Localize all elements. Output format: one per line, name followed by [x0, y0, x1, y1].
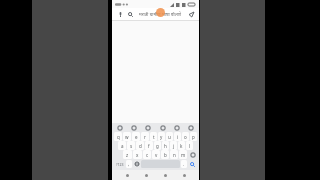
staticText: r	[144, 134, 146, 140]
staticText: s	[130, 143, 133, 149]
button[interactable]: u	[166, 132, 173, 141]
button[interactable]: x	[133, 150, 142, 159]
staticText: f	[148, 143, 150, 149]
button[interactable]: Search	[126, 10, 134, 18]
button[interactable]: Keyboard tool 1	[117, 125, 123, 131]
staticText: ,	[128, 161, 130, 167]
button[interactable]: Change language	[133, 160, 140, 168]
button[interactable]: i	[174, 132, 181, 141]
staticText: e	[135, 134, 138, 140]
staticText: b	[164, 152, 167, 158]
button[interactable]: Voice search	[116, 10, 124, 18]
button[interactable]: Back	[123, 171, 131, 179]
button[interactable]: r	[141, 132, 149, 141]
button[interactable]: z	[123, 150, 132, 159]
button[interactable]: Voice search	[112, 8, 199, 20]
button[interactable]: f	[145, 141, 153, 150]
button[interactable]: k	[178, 141, 185, 150]
button[interactable]: v	[152, 150, 160, 159]
button[interactable]: Keyboard tool 6	[188, 125, 194, 131]
button[interactable]: g	[154, 141, 161, 150]
staticText: t	[153, 134, 155, 140]
button[interactable]: ,	[126, 160, 132, 168]
button[interactable]: p	[190, 132, 197, 141]
staticText: v	[155, 152, 158, 158]
button[interactable]: Home	[142, 171, 150, 179]
button[interactable]: y	[158, 132, 165, 141]
button[interactable]: Menu	[180, 171, 188, 179]
staticText: x	[136, 152, 139, 158]
staticText: मराठी ग्रामीण भाषा बोलणे	[139, 11, 181, 17]
staticText: y	[160, 134, 163, 140]
staticText: ?123	[116, 162, 124, 167]
button[interactable]: Search	[188, 160, 197, 168]
staticText: o	[184, 134, 187, 140]
staticText: q	[117, 134, 120, 140]
staticText: j	[173, 143, 175, 149]
staticText: l	[189, 143, 191, 149]
staticText: a	[121, 143, 124, 149]
staticText: n	[173, 152, 176, 158]
button[interactable]: Send	[187, 10, 195, 18]
button[interactable]: Keyboard tool 5	[174, 125, 180, 131]
button[interactable]: Keyboard tool 2	[131, 125, 137, 131]
button[interactable]: d	[136, 141, 144, 150]
button[interactable]: w	[123, 132, 131, 141]
staticText: z	[126, 152, 129, 158]
staticText: w	[125, 134, 129, 140]
staticText: c	[146, 152, 149, 158]
button[interactable]: ?123	[114, 160, 125, 168]
button[interactable]: m	[179, 150, 187, 159]
button[interactable]: s	[127, 141, 135, 150]
staticText: p	[192, 134, 195, 140]
staticText: m	[181, 152, 186, 158]
button[interactable]: c	[143, 150, 151, 159]
button[interactable]: e	[132, 132, 140, 141]
staticText: i	[177, 134, 179, 140]
button[interactable]: Recents	[161, 171, 169, 179]
button[interactable]: Keyboard tool 4	[160, 125, 166, 131]
button[interactable]: a	[118, 141, 126, 150]
button[interactable]: o	[182, 132, 189, 141]
button[interactable]: l	[186, 141, 193, 150]
button[interactable]: n	[170, 150, 178, 159]
button[interactable]: q	[114, 132, 122, 141]
staticText: .	[183, 161, 185, 167]
button[interactable]: Backspace	[188, 150, 197, 159]
button[interactable]: t	[150, 132, 157, 141]
button[interactable]: b	[161, 150, 169, 159]
button[interactable]: h	[162, 141, 169, 150]
staticText: u	[168, 134, 171, 140]
staticText: g	[156, 143, 159, 149]
button[interactable]: j	[170, 141, 177, 150]
staticText: k	[180, 143, 183, 149]
staticText: h	[164, 143, 167, 149]
staticText: d	[139, 143, 142, 149]
button[interactable]: Keyboard tool 3	[145, 125, 151, 131]
button[interactable]: .	[181, 160, 187, 168]
